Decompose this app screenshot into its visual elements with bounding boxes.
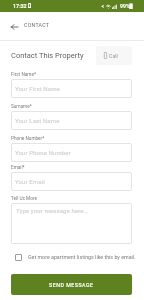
button[interactable]: SEND MESSAGE: [11, 274, 132, 295]
staticText: Your Last Name: [15, 117, 60, 124]
staticText: Your Email: [15, 178, 45, 185]
button[interactable]: Type your message here...: [11, 203, 132, 244]
staticText: CONTACT: [24, 22, 50, 28]
button[interactable]: Call: [96, 46, 132, 65]
button[interactable]: Get more apartment listings like this by…: [15, 250, 136, 264]
staticText: 99%: [120, 3, 130, 9]
staticText: Your Phone Number: [15, 149, 71, 156]
button[interactable]: Back: [7, 20, 21, 34]
staticText: Type your message here...: [16, 207, 89, 214]
staticText: First Name*: [11, 72, 36, 78]
staticText: Call: [109, 53, 118, 59]
staticText: SEND MESSAGE: [49, 282, 94, 288]
staticText: Contact This Property: [11, 51, 84, 60]
staticText: Phone Number*: [11, 136, 45, 142]
staticText: Surname*: [11, 104, 32, 110]
staticText: Email*: [11, 165, 25, 171]
button[interactable]: Your Email: [11, 172, 132, 191]
staticText: Your First Name: [15, 85, 60, 92]
button[interactable]: Your First Name: [11, 79, 132, 98]
button[interactable]: Your Phone Number: [11, 143, 132, 162]
button[interactable]: Your Last Name: [11, 111, 132, 130]
staticText: 17:32: [13, 3, 27, 9]
staticText: Get more apartment listings like this by…: [28, 254, 136, 260]
staticText: Tell Us More: [11, 196, 37, 202]
